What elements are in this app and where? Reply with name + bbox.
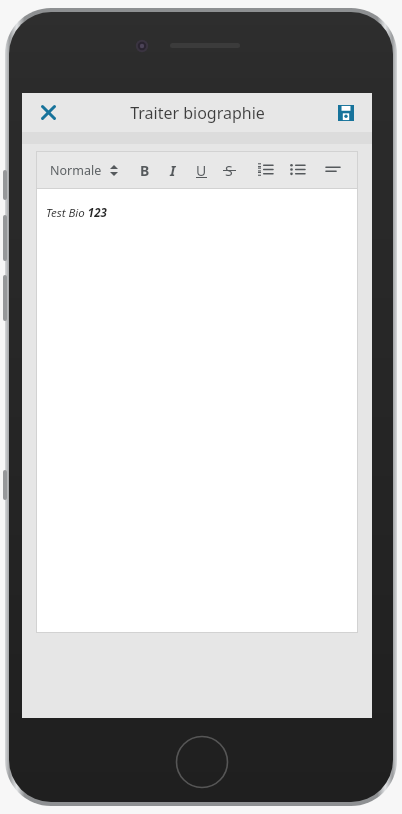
staticText: Traiter biographie xyxy=(130,102,265,124)
staticText: U xyxy=(196,161,207,180)
button[interactable]: U xyxy=(190,159,212,181)
button[interactable]: Fermer xyxy=(28,93,68,132)
button[interactable]: Liste à puces xyxy=(286,159,308,181)
button[interactable]: S xyxy=(218,159,240,181)
staticText: Normale xyxy=(50,162,102,179)
button[interactable]: B xyxy=(134,159,156,181)
staticText: I xyxy=(170,161,176,180)
button[interactable]: I xyxy=(162,159,184,181)
staticText: B xyxy=(140,161,150,180)
staticText: Test Bio 123 xyxy=(46,205,107,221)
button[interactable]: Alignement xyxy=(322,159,344,181)
button[interactable]: Normale xyxy=(48,158,120,183)
button[interactable]: Enregistrer xyxy=(327,94,365,132)
button[interactable]: Liste numérotée xyxy=(254,159,276,181)
staticText: S xyxy=(225,161,233,180)
